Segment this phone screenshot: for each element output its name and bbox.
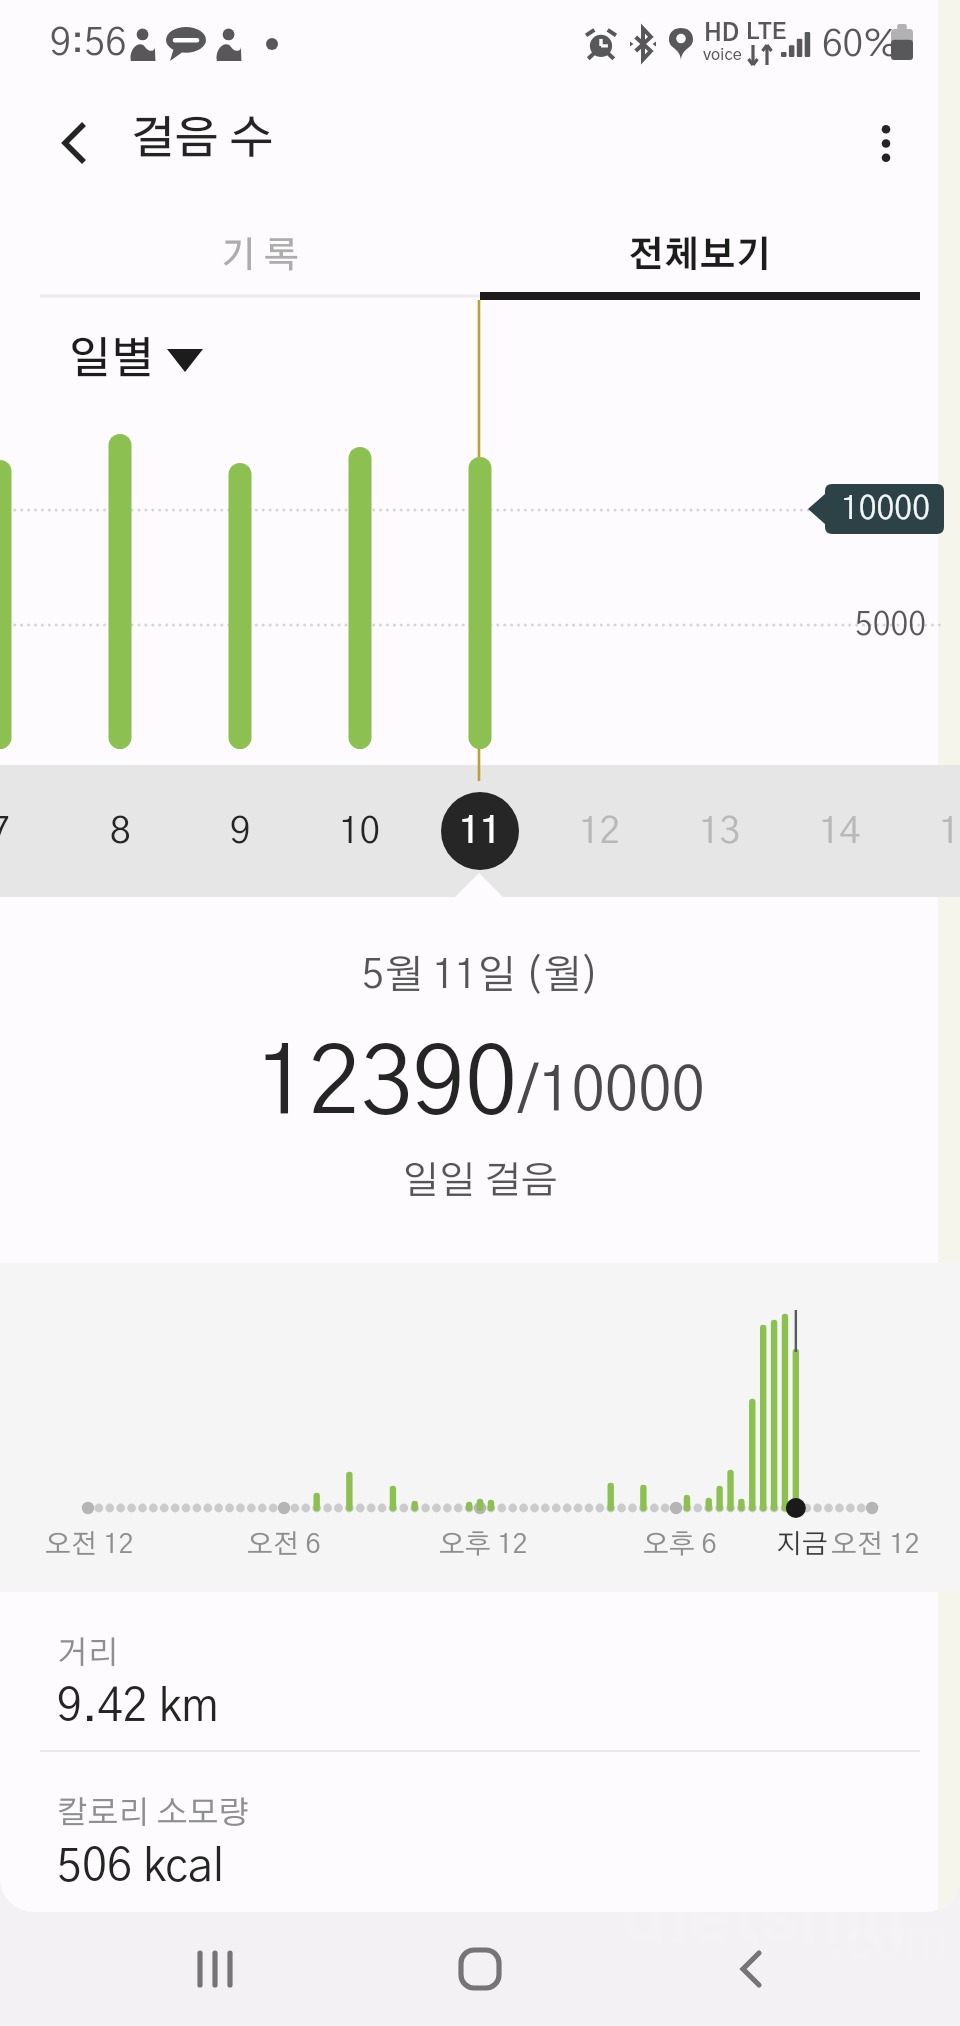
button[interactable]: Recent apps xyxy=(155,1912,275,2026)
staticText: 오전 12 xyxy=(831,1531,920,1558)
staticText: voice xyxy=(703,47,742,63)
button[interactable]: Back xyxy=(691,1912,811,2026)
staticText: 12 xyxy=(579,813,621,850)
button[interactable]: 거리 xyxy=(0,1592,960,1750)
staticText: 오후 12 xyxy=(439,1531,528,1558)
button[interactable]: 전체보기 xyxy=(480,198,920,300)
staticText: 5000 xyxy=(855,609,927,641)
staticText: 전체보기 xyxy=(628,238,772,274)
button[interactable]: Home xyxy=(420,1912,540,2026)
staticText: 오전 12 xyxy=(45,1531,134,1558)
staticText: LTE xyxy=(746,21,787,44)
staticText: 13 xyxy=(699,813,741,850)
staticText: 14 xyxy=(819,813,861,850)
staticText: 7 xyxy=(0,813,11,850)
staticText: 오전 6 xyxy=(247,1531,321,1558)
button[interactable]: Back xyxy=(26,95,122,191)
button[interactable]: More options xyxy=(838,95,934,191)
staticText: HD xyxy=(704,22,740,46)
button[interactable]: 일별 xyxy=(68,338,203,382)
staticText: 506 kcal xyxy=(57,1845,225,1890)
staticText: 9:56 xyxy=(50,25,127,63)
staticText: 10000 xyxy=(841,493,930,525)
button[interactable]: 14 xyxy=(780,765,900,897)
button[interactable]: 7 xyxy=(0,765,60,897)
staticText: 8 xyxy=(110,813,131,850)
staticText: 12390 xyxy=(256,1038,518,1132)
button[interactable]: 13 xyxy=(660,765,780,897)
button[interactable]: 기록 xyxy=(40,198,480,300)
staticText: 일별 xyxy=(68,338,154,382)
staticText: 9.42 km xyxy=(57,1685,219,1730)
staticText: 지금 xyxy=(776,1531,828,1558)
staticText: 오후 6 xyxy=(643,1531,717,1558)
staticText: 10 xyxy=(339,813,381,850)
button[interactable]: 11 xyxy=(420,765,540,897)
staticText: /10000 xyxy=(518,1062,705,1122)
staticText: 거리 xyxy=(57,1637,119,1669)
staticText: 11 xyxy=(459,813,501,850)
staticText: 60% xyxy=(822,26,899,63)
staticText: dietshin xyxy=(622,1882,908,1956)
button[interactable]: 12 xyxy=(540,765,660,897)
staticText: 15 xyxy=(939,813,960,850)
button[interactable]: 8 xyxy=(60,765,180,897)
button[interactable]: 15 xyxy=(900,765,960,897)
staticText: 걸음 수 xyxy=(131,117,274,162)
staticText: 9 xyxy=(230,813,251,850)
staticText: 칼로리 소모량 xyxy=(57,1797,250,1829)
staticText: 5월 11일 (월) xyxy=(362,956,599,996)
staticText: 기록 xyxy=(221,238,308,274)
staticText: 일일 걸음 xyxy=(402,1163,558,1201)
button[interactable]: 칼로리 소모량 xyxy=(0,1752,960,1910)
button[interactable]: 10 xyxy=(300,765,420,897)
button[interactable]: 9 xyxy=(180,765,300,897)
